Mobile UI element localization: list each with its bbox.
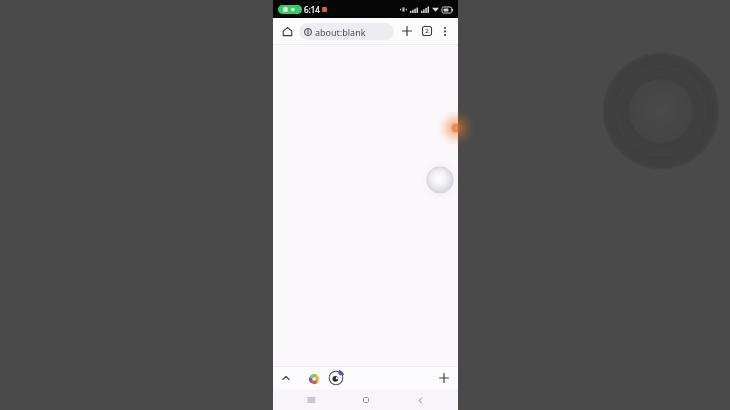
- button[interactable]: Back: [412, 392, 428, 408]
- button[interactable]: Extension: [327, 369, 345, 387]
- button[interactable]: Profile: [306, 371, 321, 386]
- button[interactable]: Tabs: [418, 22, 436, 40]
- button[interactable]: Home: [358, 392, 374, 408]
- button[interactable]: Add: [436, 370, 452, 386]
- staticText: about:blank: [315, 26, 366, 38]
- button[interactable]: New tab: [398, 22, 416, 40]
- button[interactable]: Expand: [279, 371, 293, 385]
- button[interactable]: Recents: [303, 392, 319, 408]
- staticText: 6:14: [304, 4, 320, 15]
- button[interactable]: More options: [437, 23, 453, 39]
- button[interactable]: about:blank: [299, 23, 394, 40]
- button[interactable]: Home: [278, 22, 296, 40]
- staticText: 2: [425, 27, 429, 35]
